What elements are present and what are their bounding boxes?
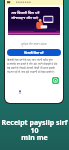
button[interactable]: Account — [18, 90, 22, 94]
staticText: Receipt payslip sirf 10 min me — [0, 118, 69, 142]
button[interactable]: बिजली बिल भरें — [7, 49, 61, 56]
button[interactable]: Share on WhatsApp — [52, 77, 59, 84]
staticText: बिजली बिल भरने के बाद आप अपनी रसीद तुरंत… — [7, 58, 61, 74]
staticText: सुरक्षित और आसान प्रक्रिया — [5, 42, 63, 46]
staticText: अब बिजली बिल भरें ऑनलाइन और पाएं — [11, 10, 40, 20]
staticText: बिजली बिल भरें — [24, 51, 44, 55]
